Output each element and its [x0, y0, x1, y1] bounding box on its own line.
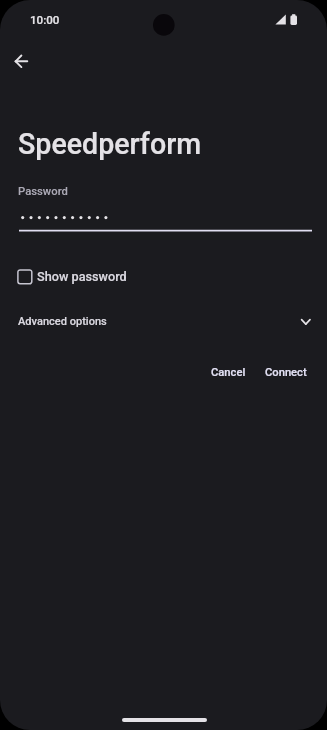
staticText: Speedperform [18, 127, 202, 161]
staticText: Connect [265, 366, 307, 379]
button[interactable]: Cancel [202, 360, 256, 386]
button[interactable]: Expand advanced options [290, 305, 322, 337]
staticText: 10:00 [30, 13, 60, 27]
staticText: Cancel [211, 366, 246, 379]
button[interactable]: Back [5, 45, 37, 77]
button[interactable]: Connect [256, 360, 318, 386]
staticText: Show password [37, 269, 127, 284]
staticText: Advanced options [18, 315, 107, 328]
staticText: Password [18, 185, 68, 198]
button[interactable]: Show password [12, 262, 137, 290]
button[interactable]: Advanced options [0, 306, 327, 730]
